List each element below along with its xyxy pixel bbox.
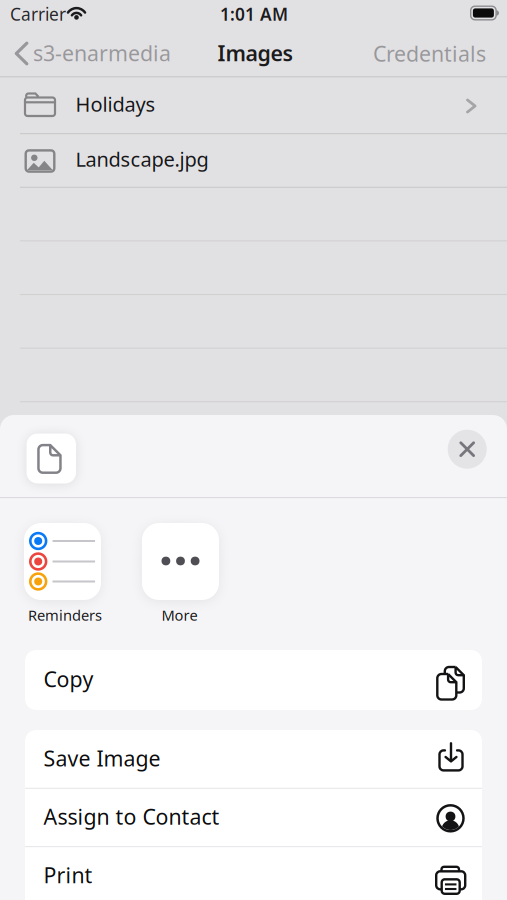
- button[interactable]: Reminders: [14, 521, 110, 625]
- button[interactable]: More: [132, 521, 228, 625]
- staticText: Holidays: [75, 91, 155, 117]
- staticText: More: [161, 605, 197, 625]
- button[interactable]: Copy: [25, 651, 482, 709]
- staticText: Print: [43, 861, 92, 889]
- button[interactable]: Landscape.jpg: [0, 134, 507, 187]
- button[interactable]: Save Image: [25, 730, 482, 788]
- staticText: Carrier: [10, 2, 66, 25]
- button[interactable]: Assign to Contact: [25, 788, 482, 846]
- staticText: s3-enarmedia: [33, 39, 171, 67]
- staticText: Save Image: [43, 744, 160, 772]
- button[interactable]: Credentials: [326, 39, 486, 68]
- button[interactable]: Back: [13, 40, 198, 67]
- staticText: Images: [217, 39, 293, 67]
- staticText: 1:01 AM: [220, 2, 288, 25]
- staticText: Assign to Contact: [43, 802, 219, 830]
- staticText: Copy: [43, 665, 93, 693]
- button[interactable]: Print: [25, 847, 482, 900]
- staticText: Credentials: [373, 39, 486, 68]
- staticText: Reminders: [28, 605, 102, 625]
- button[interactable]: Close: [445, 427, 489, 471]
- button[interactable]: Holidays: [0, 77, 507, 133]
- staticText: Landscape.jpg: [75, 146, 208, 172]
